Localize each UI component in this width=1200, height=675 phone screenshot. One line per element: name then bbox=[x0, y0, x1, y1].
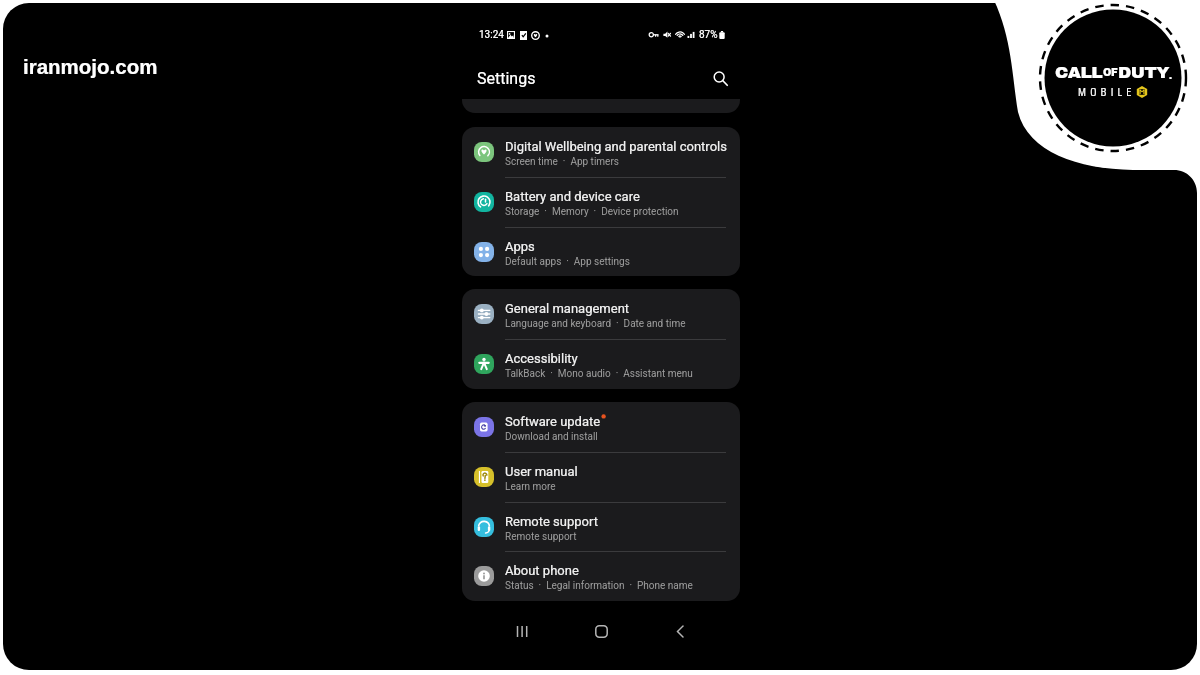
button[interactable]: Software update bbox=[462, 402, 740, 452]
staticText: Apps bbox=[505, 239, 535, 254]
button[interactable]: User manual bbox=[462, 452, 740, 502]
staticText: Remote support bbox=[505, 531, 577, 543]
staticText: Settings bbox=[477, 69, 536, 88]
button[interactable]: Digital Wellbeing and parental controls bbox=[462, 127, 740, 177]
button[interactable]: Search bbox=[706, 64, 734, 92]
staticText: About phone bbox=[505, 563, 579, 578]
button[interactable]: General management bbox=[462, 289, 740, 339]
staticText: . bbox=[1169, 71, 1172, 81]
staticText: Digital Wellbeing and parental controls bbox=[505, 139, 727, 154]
button[interactable]: Back bbox=[663, 614, 697, 648]
staticText: TalkBack · Mono audio · Assistant menu bbox=[505, 368, 693, 380]
staticText: Language and keyboard · Date and time bbox=[505, 318, 686, 330]
staticText: Software update bbox=[505, 414, 601, 429]
staticText: User manual bbox=[505, 464, 578, 479]
staticText: Learn more bbox=[505, 481, 556, 493]
staticText: Screen time · App timers bbox=[505, 156, 619, 168]
staticText: Status · Legal information · Phone name bbox=[505, 580, 693, 592]
button[interactable]: About phone bbox=[462, 551, 740, 601]
staticText: CALL bbox=[1055, 63, 1103, 81]
staticText: DUTY bbox=[1118, 63, 1169, 81]
staticText: General management bbox=[505, 301, 630, 316]
staticText: Remote support bbox=[505, 514, 598, 529]
button[interactable]: Accessibility bbox=[462, 339, 740, 389]
staticText: 87% bbox=[699, 29, 718, 41]
staticText: OF bbox=[1103, 67, 1118, 78]
staticText: Download and install bbox=[505, 431, 598, 443]
staticText: Accessibility bbox=[505, 351, 578, 366]
button[interactable]: Remote support bbox=[462, 502, 740, 552]
button[interactable]: Home bbox=[584, 614, 618, 648]
button[interactable]: Battery and device care bbox=[462, 177, 740, 227]
button[interactable]: Apps bbox=[462, 227, 740, 276]
staticText: 13:24 bbox=[479, 29, 504, 41]
staticText: Default apps · App settings bbox=[505, 256, 630, 268]
staticText: iranmojo.com bbox=[23, 55, 158, 78]
button[interactable]: Recent apps bbox=[505, 614, 539, 648]
staticText: Battery and device care bbox=[505, 189, 640, 204]
staticText: Storage · Memory · Device protection bbox=[505, 206, 679, 218]
staticText: MOBILE bbox=[1078, 82, 1136, 101]
